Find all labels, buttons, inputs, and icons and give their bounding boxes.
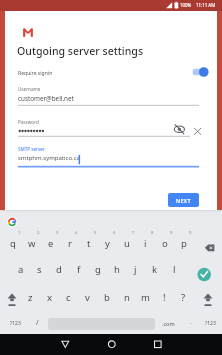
staticText: h [114,263,120,276]
staticText: Username [18,86,41,92]
staticText: / [36,318,39,328]
staticText: c [66,291,71,304]
staticText: 3 [56,230,59,236]
staticText: b [104,291,110,304]
button[interactable] [191,123,205,137]
staticText: 7 [132,230,135,236]
button[interactable] [3,288,21,306]
staticText: 6 [113,230,116,236]
staticText: ! [163,291,166,304]
staticText: Password [18,119,39,125]
staticText: d [56,263,62,276]
button[interactable]: z [21,285,40,309]
button[interactable] [172,120,188,136]
button[interactable]: h [107,257,126,281]
staticText: 9 [170,230,173,236]
button[interactable]: e [41,231,60,255]
staticText: .com [162,320,175,327]
button[interactable] [149,336,167,352]
button[interactable]: l [165,257,184,281]
staticText: 2 [37,230,40,236]
button[interactable] [199,288,217,306]
button[interactable]: y [98,231,117,255]
button[interactable] [201,238,219,256]
staticText: ?123 [10,320,21,327]
button[interactable]: j [126,257,145,281]
button[interactable] [18,84,199,106]
button[interactable]: c [59,285,78,309]
staticText: · [190,319,192,327]
button[interactable]: i [136,231,155,255]
button[interactable]: ?123 [201,311,220,335]
staticText: t [87,237,91,250]
staticText: x [47,291,53,304]
button[interactable] [195,265,214,284]
staticText: 8 [151,230,154,236]
staticText: 100% [180,2,192,8]
button[interactable]: ? [174,285,193,309]
button[interactable]: t [79,231,98,255]
button[interactable]: o [155,231,174,255]
button[interactable] [18,115,168,137]
staticText: i [144,237,147,250]
staticText: y [105,237,110,250]
staticText: l [173,263,176,276]
staticText: f [77,263,81,276]
button[interactable]: k [145,257,164,281]
staticText: a [18,263,24,276]
button[interactable] [18,145,199,167]
staticText: p [181,237,187,250]
button[interactable]: x [40,285,59,309]
staticText: smtphm.sympatico.ca [18,154,80,162]
staticText: 1 [18,230,21,236]
button[interactable]: w [22,231,41,255]
button[interactable]: g [88,257,107,281]
button[interactable]: r [60,231,79,255]
staticText: j [134,263,137,276]
button[interactable]: u [117,231,136,255]
button[interactable]: b [97,285,116,309]
staticText: SMTP server [18,146,45,152]
staticText: r [68,237,72,250]
button[interactable]: d [49,257,68,281]
staticText: g [95,263,101,276]
button[interactable]: ! [155,285,174,309]
staticText: v [85,291,90,304]
staticText: 0 [189,230,192,236]
staticText: 5 [94,230,97,236]
button[interactable]: NEXT [168,193,199,207]
staticText: customer@bell.net [18,94,74,103]
button[interactable]: f [69,257,88,281]
button[interactable]: · [181,311,200,335]
button[interactable]: .com [159,311,178,335]
button[interactable]: n [117,285,136,309]
button[interactable] [5,214,21,230]
staticText: Outgoing server settings [17,44,144,58]
staticText: 11:11 AM [196,2,216,8]
button[interactable]: s [30,257,49,281]
button[interactable]: q [3,231,22,255]
button[interactable]: p [174,231,193,255]
button[interactable]: / [28,311,47,335]
staticText: q [10,237,16,250]
button[interactable]: m [136,285,155,309]
staticText: z [28,291,33,304]
button[interactable]: a [11,257,30,281]
staticText: n [124,291,130,304]
staticText: 4 [75,230,78,236]
staticText: k [152,263,158,276]
staticText: NEXT [176,197,191,204]
button[interactable]: v [78,285,97,309]
button[interactable]: ?123 [6,311,25,335]
staticText: u [124,237,130,250]
staticText: Require signin [18,70,53,77]
button[interactable] [56,336,74,352]
staticText: s [37,263,42,276]
staticText: o [162,237,168,250]
button[interactable] [188,63,214,81]
button[interactable] [103,336,121,352]
staticText: ?123 [205,320,216,327]
staticText: ? [181,291,186,304]
staticText: e [48,237,54,250]
